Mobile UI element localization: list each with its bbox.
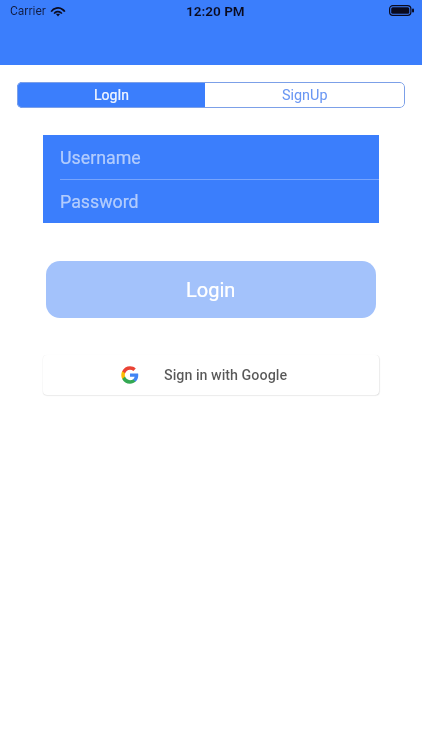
staticText: Login: [186, 278, 236, 301]
staticText: Username: [60, 147, 141, 168]
staticText: SignUp: [282, 87, 328, 104]
other: Wi-Fi: [51, 6, 65, 16]
staticText: Carrier: [10, 4, 46, 18]
button[interactable]: LogIn: [17, 82, 205, 108]
button[interactable]: SignUp: [205, 82, 405, 108]
button[interactable]: Username: [60, 135, 379, 179]
other: Google: [121, 366, 139, 384]
button[interactable]: Password: [60, 180, 379, 223]
button[interactable]: Google: [43, 355, 379, 395]
staticText: 12:20 PM: [186, 3, 245, 19]
staticText: Password: [60, 191, 139, 212]
button[interactable]: Login: [46, 261, 376, 318]
staticText: Sign in with Google: [164, 367, 288, 384]
other: Battery full: [389, 5, 414, 16]
staticText: LogIn: [94, 87, 129, 103]
